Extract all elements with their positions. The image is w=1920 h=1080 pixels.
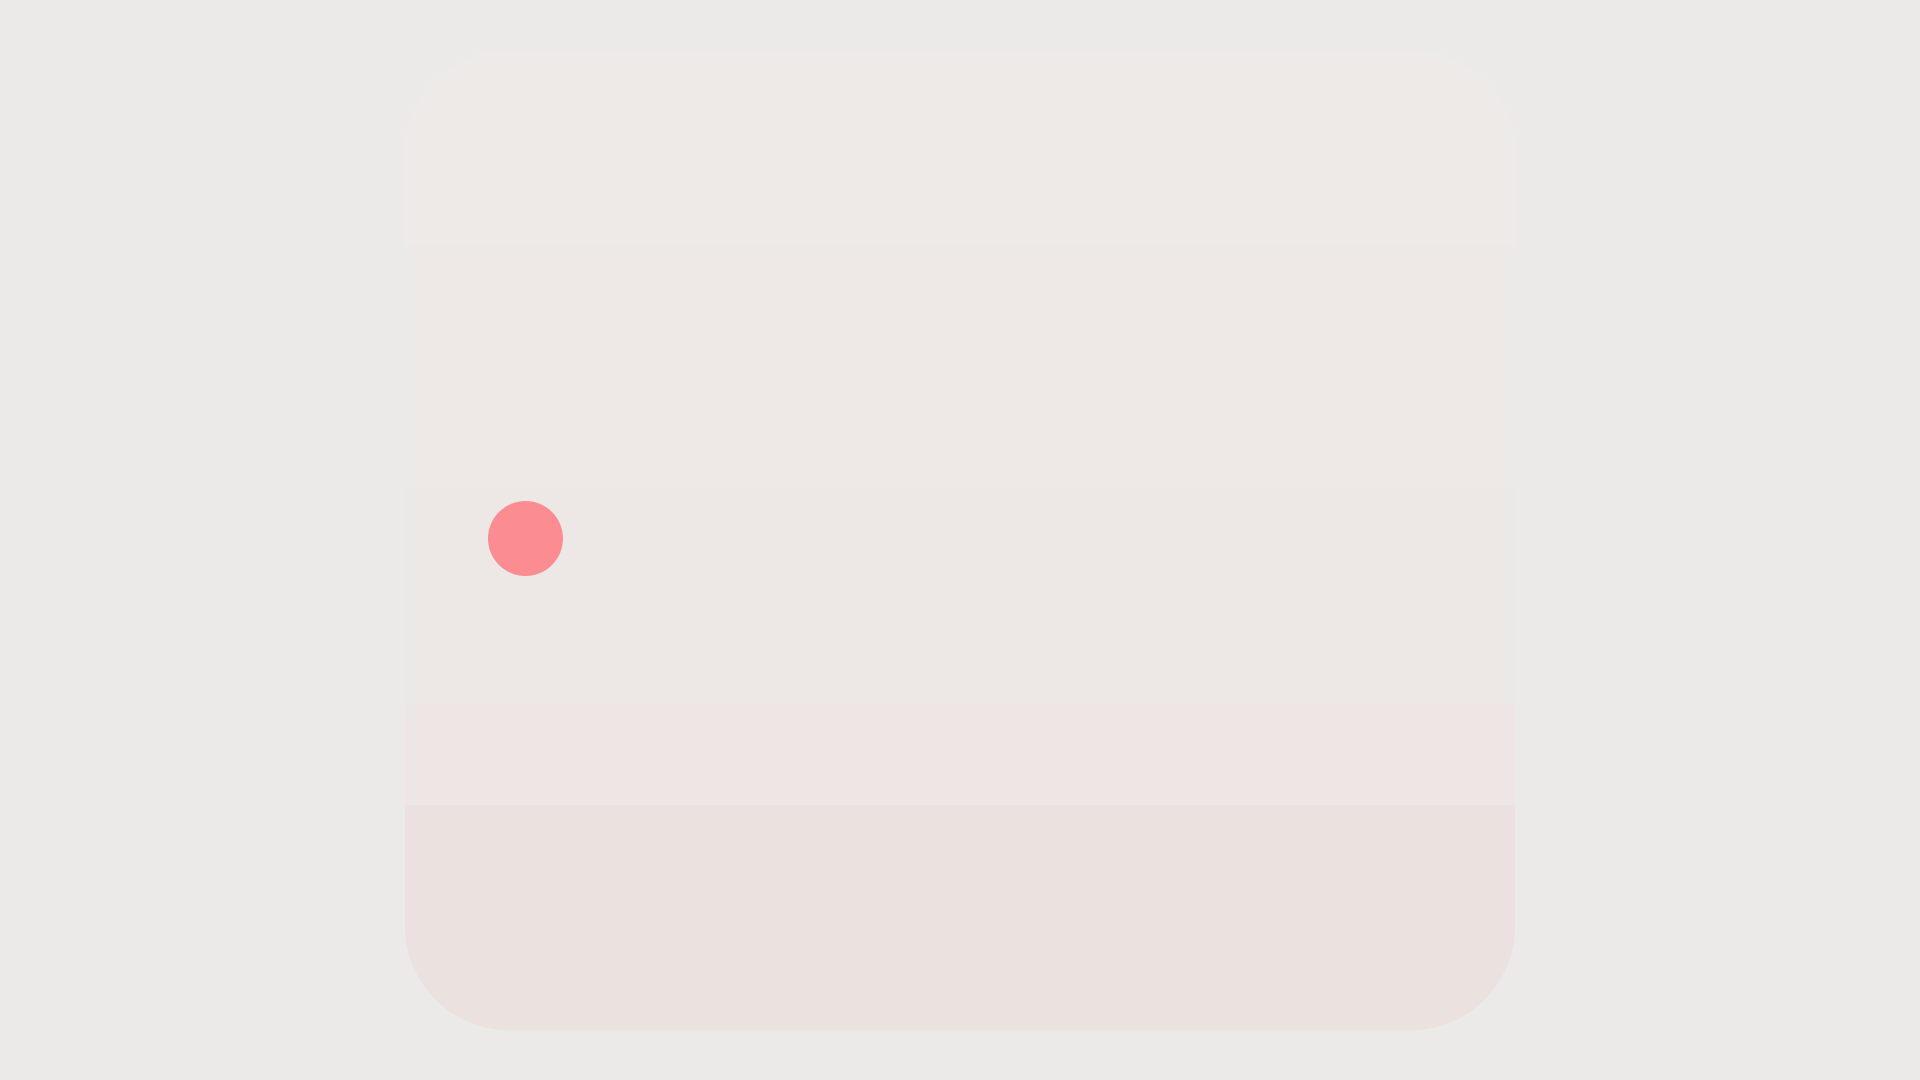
button[interactable]: Open item <box>405 487 1515 705</box>
